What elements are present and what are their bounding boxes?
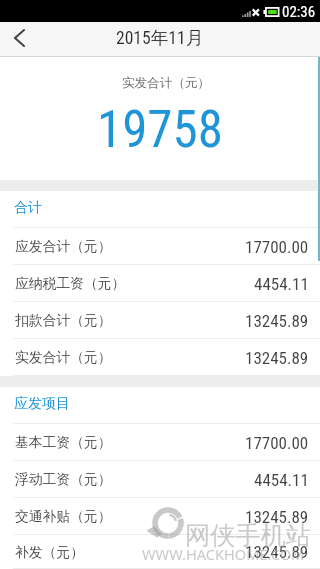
button[interactable]: 浮动工资（元） <box>0 461 320 498</box>
button[interactable]: 补发（元） <box>0 535 320 569</box>
staticText: 13245.89 <box>245 311 309 331</box>
staticText: 补发（元） <box>15 544 84 561</box>
staticText: 13245.89 <box>245 348 309 368</box>
staticText: 应发合计（元） <box>15 238 112 255</box>
button[interactable]: Back <box>0 22 40 56</box>
staticText: 4454.11 <box>254 274 309 294</box>
staticText: 4454.11 <box>254 470 309 490</box>
button[interactable]: 交通补贴（元） <box>0 498 320 535</box>
staticText: 扣款合计（元） <box>15 312 112 329</box>
staticText: 合计 <box>14 199 42 217</box>
staticText: 网侠手机站 <box>185 520 311 552</box>
staticText: 应发项目 <box>14 395 70 413</box>
staticText: WWW.HACKHOME.COM <box>142 544 305 564</box>
staticText: 17700.00 <box>245 237 309 257</box>
staticText: 13245.89 <box>245 507 309 527</box>
button[interactable]: 应发合计（元） <box>0 228 320 265</box>
staticText: 实发合计（元） <box>15 349 112 366</box>
button[interactable]: 扣款合计（元） <box>0 302 320 339</box>
button[interactable]: 实发合计（元） <box>0 339 320 376</box>
staticText: 2015年11月 <box>116 27 204 49</box>
staticText: 13245.89 <box>245 542 309 562</box>
staticText: 实发合计（元） <box>122 75 211 91</box>
staticText: 基本工资（元） <box>15 434 112 451</box>
button[interactable]: 应纳税工资（元） <box>0 265 320 302</box>
staticText: 应纳税工资（元） <box>15 275 126 292</box>
staticText: 浮动工资（元） <box>15 471 112 488</box>
staticText: 交通补贴（元） <box>15 508 112 525</box>
staticText: 17700.00 <box>245 433 309 453</box>
button[interactable]: 基本工资（元） <box>0 424 320 461</box>
staticText: 19758 <box>97 100 223 160</box>
staticText: 02:36 <box>282 3 316 21</box>
